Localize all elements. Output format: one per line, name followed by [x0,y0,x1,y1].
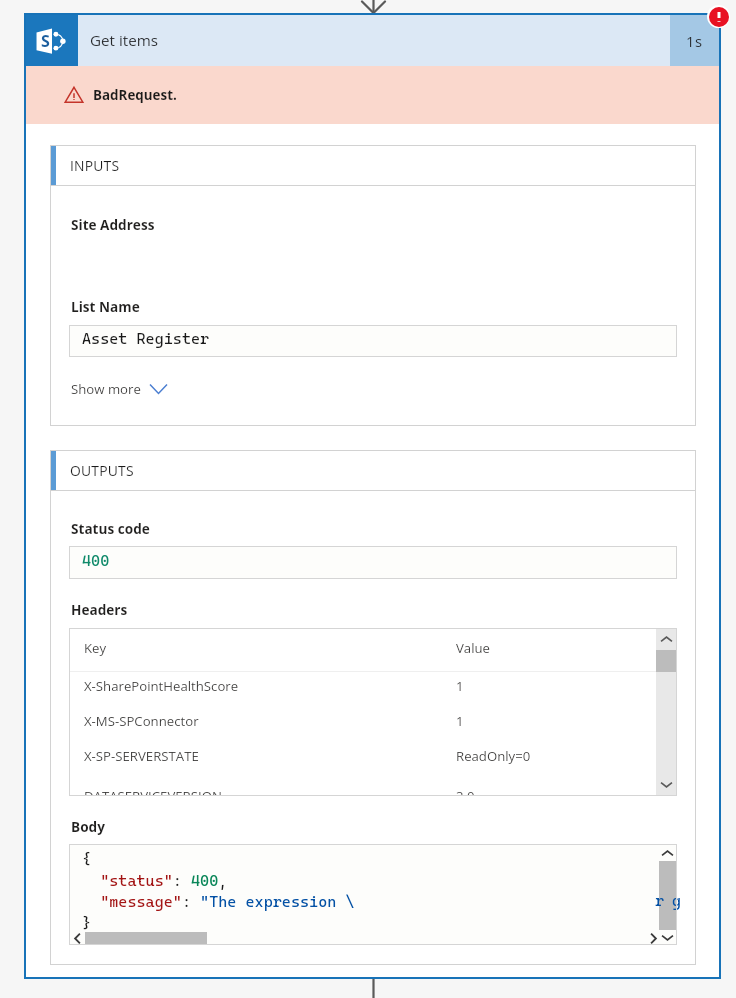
other: Scroll headers [656,629,676,795]
other: Scroll body horizontally [70,932,677,944]
staticText: Asset Register [82,330,210,348]
staticText: INPUTS [70,156,120,175]
staticText: Status code [71,519,150,538]
staticText: 400 [82,552,110,570]
staticText: List Name [71,297,140,316]
staticText: OUTPUTS [70,461,134,480]
staticText: DATASERVICEVERSION [84,787,456,796]
button[interactable]: X-SP-SERVERSTATE [69,738,677,774]
staticText: Headers [71,600,128,619]
button[interactable]: DATASERVICEVERSION [69,778,677,796]
staticText: Show more [71,380,141,398]
staticText: S [41,30,50,52]
other: Scroll body vertically [659,845,676,944]
staticText: 3.0 [456,787,475,796]
staticText: ReadOnly=0 [456,747,531,765]
staticText: 1s [686,31,703,51]
staticText: Value [456,639,491,657]
staticText: Site Address [71,215,155,234]
staticText: Body [71,817,105,836]
button[interactable]: X-SharePointHealthScore [69,668,677,704]
staticText: g [672,892,682,910]
staticText: BadRequest. [93,86,177,104]
staticText: Key [84,639,456,657]
button[interactable]: Error [709,7,729,27]
staticText: 1 [456,712,464,730]
button[interactable]: INPUTS [50,145,696,185]
staticText: X-MS-SPConnector [84,712,456,730]
button[interactable]: X-MS-SPConnector [69,703,677,739]
staticText: X-SharePointHealthScore [84,677,456,695]
button[interactable]: Get items [78,15,670,66]
staticText: Get items [90,30,159,51]
staticText: X-SP-SERVERSTATE [84,747,456,765]
button[interactable]: OUTPUTS [50,450,696,490]
staticText: { "status": 400, "message": "The express… [82,850,355,932]
button[interactable]: Show more [71,380,173,398]
button[interactable]: 1s [670,15,719,66]
staticText: 1 [456,677,464,695]
staticText: r [655,892,665,910]
